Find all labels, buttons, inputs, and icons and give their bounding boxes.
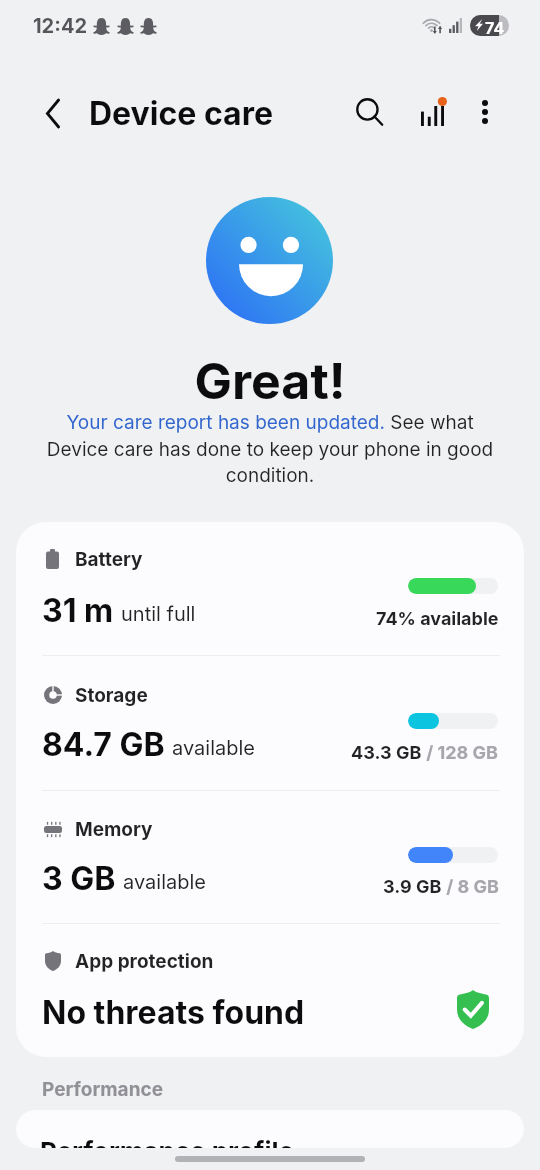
staticText: App protection: [75, 950, 214, 973]
staticText: Device care: [89, 94, 273, 133]
staticText: 31 m: [42, 591, 114, 630]
button[interactable]: Battery: [16, 522, 524, 655]
button[interactable]: Search: [348, 90, 392, 134]
button[interactable]: Diagnostics: [411, 91, 453, 136]
button[interactable]: Memory: [16, 792, 524, 925]
staticText: / 8 GB: [442, 876, 499, 898]
staticText: Performance profile: [40, 1136, 295, 1148]
staticText: 3 GB: [42, 859, 116, 898]
staticText: available: [123, 870, 206, 894]
button[interactable]: App protection: [16, 923, 524, 1057]
staticText: Storage: [75, 684, 148, 706]
staticText: Your care report has been updated. See w…: [42, 411, 498, 486]
button[interactable]: Performance profile: [16, 1110, 524, 1148]
staticText: 12:42: [33, 14, 88, 38]
staticText: Performance: [42, 1078, 163, 1101]
button[interactable]: Storage: [16, 658, 524, 791]
staticText: / 128 GB: [422, 742, 499, 764]
staticText: 74: [485, 18, 505, 36]
staticText: 74% available: [376, 608, 499, 630]
staticText: 3.9 GB: [383, 876, 442, 898]
staticText: Memory: [75, 818, 153, 840]
staticText: until full: [121, 602, 196, 626]
staticText: No threats found: [42, 993, 305, 1032]
button[interactable]: Back: [31, 91, 75, 135]
staticText: 43.3 GB: [351, 742, 422, 764]
staticText: Great!: [0, 351, 540, 411]
staticText: Battery: [75, 548, 143, 570]
staticText: 84.7 GB: [42, 725, 165, 764]
button[interactable]: More options: [463, 90, 507, 134]
staticText: available: [172, 736, 255, 760]
